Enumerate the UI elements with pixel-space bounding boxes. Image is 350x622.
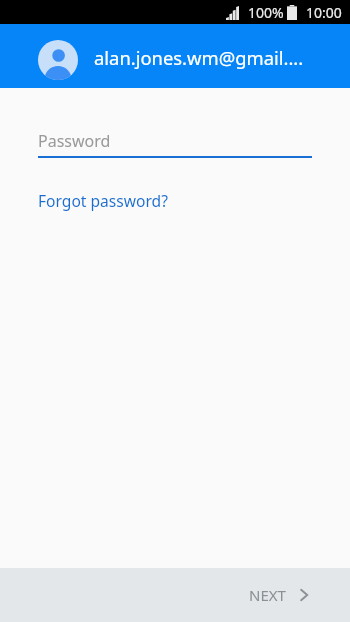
other: Account avatar [38,40,78,80]
other: Signal strength [226,6,239,20]
button[interactable]: Password [38,130,312,158]
button[interactable]: Forgot password? [38,190,168,211]
button[interactable]: NEXT [235,575,322,615]
staticText: alan.jones.wm@gmail.... [94,45,304,70]
button[interactable]: Account avatar [0,24,350,88]
staticText: Password [38,130,111,152]
other: Battery full [287,5,297,20]
staticText: 10:00 [306,3,342,22]
staticText: NEXT [249,585,286,605]
staticText: Forgot password? [38,190,168,211]
staticText: 100% [248,3,284,22]
other: Next [300,589,308,601]
